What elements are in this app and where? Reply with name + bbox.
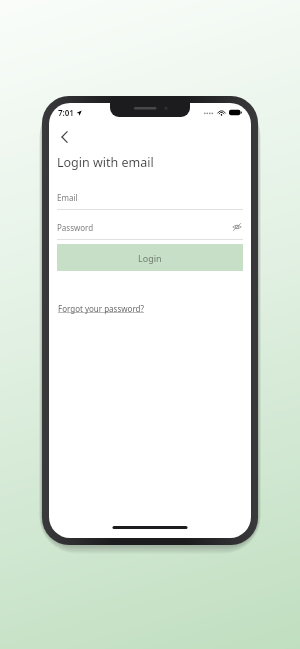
staticText: 7:01 xyxy=(58,107,74,118)
button[interactable]: Show password xyxy=(231,221,243,233)
button[interactable]: Back xyxy=(53,126,75,148)
button[interactable]: Password xyxy=(57,219,243,240)
staticText: Password xyxy=(57,222,94,233)
staticText: Email xyxy=(57,192,78,203)
button[interactable]: Forgot your password? xyxy=(57,301,145,316)
button[interactable]: Login xyxy=(57,244,243,271)
staticText: Login with email xyxy=(57,154,154,171)
staticText: Login xyxy=(138,252,162,264)
staticText: Forgot your password? xyxy=(58,303,144,314)
button[interactable]: Email xyxy=(57,189,243,210)
